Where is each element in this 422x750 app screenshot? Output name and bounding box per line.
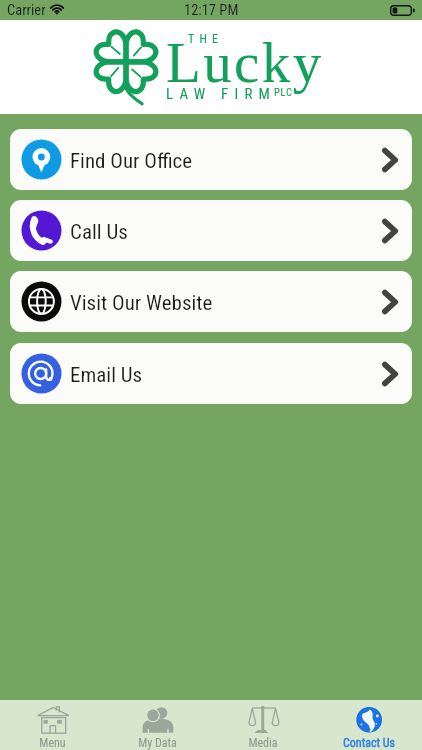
- button[interactable]: Find Our Office: [10, 129, 412, 190]
- other: Battery: [390, 5, 415, 16]
- staticText: Find Our Office: [70, 149, 193, 174]
- staticText: Menu: [39, 736, 66, 750]
- staticText: Call Us: [70, 220, 128, 245]
- staticText: Media: [248, 736, 278, 750]
- button[interactable]: Call Us: [10, 200, 412, 261]
- button[interactable]: Email Us: [10, 343, 412, 404]
- staticText: 12:17 PM: [184, 2, 239, 19]
- staticText: THE: [188, 32, 224, 46]
- staticText: Carrier: [7, 2, 46, 19]
- staticText: Contact Us: [343, 736, 395, 750]
- staticText: Visit Our Website: [70, 291, 213, 316]
- button[interactable]: Contact Us: [316, 700, 422, 750]
- button[interactable]: Visit Our Website: [10, 271, 412, 332]
- staticText: My Data: [138, 736, 177, 750]
- button[interactable]: My Data: [105, 700, 210, 750]
- button[interactable]: Menu: [0, 700, 105, 750]
- button[interactable]: Media: [210, 700, 316, 750]
- staticText: LAW FIRM: [166, 85, 277, 103]
- staticText: PLC: [274, 86, 293, 98]
- staticText: Lucky: [166, 31, 324, 94]
- staticText: Email Us: [70, 363, 143, 388]
- other: Wi-Fi signal: [50, 3, 64, 17]
